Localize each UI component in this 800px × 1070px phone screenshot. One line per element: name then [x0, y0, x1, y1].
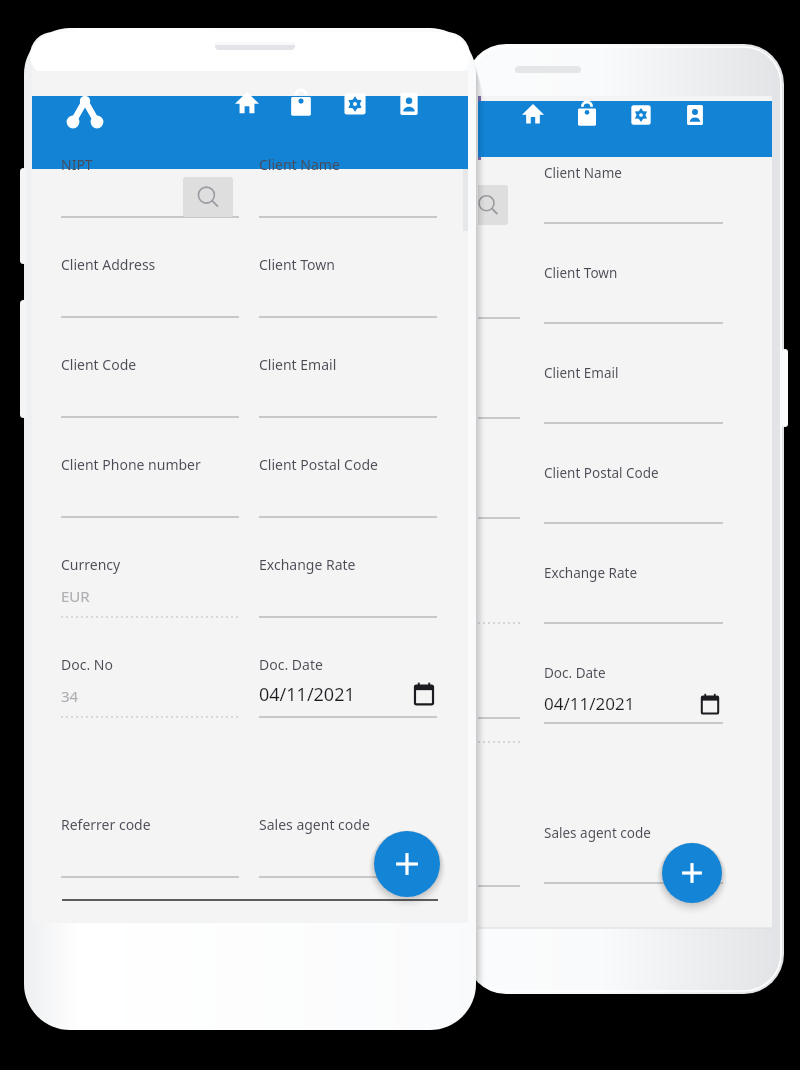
button[interactable]: Shop: [281, 84, 321, 124]
button[interactable]: App logo: [64, 90, 108, 126]
button[interactable]: Add new document: [662, 843, 722, 903]
button[interactable]: Shop: [567, 95, 607, 135]
button[interactable]: Pick date: [410, 681, 438, 709]
button[interactable]: Profile: [675, 95, 715, 135]
button[interactable]: Settings: [335, 84, 375, 124]
button[interactable]: Add new document: [374, 831, 440, 897]
button[interactable]: Home: [513, 95, 553, 135]
button[interactable]: Settings: [621, 95, 661, 135]
button[interactable]: Profile: [389, 84, 429, 124]
button[interactable]: Search client: [183, 177, 233, 217]
button[interactable]: Home: [227, 84, 267, 124]
